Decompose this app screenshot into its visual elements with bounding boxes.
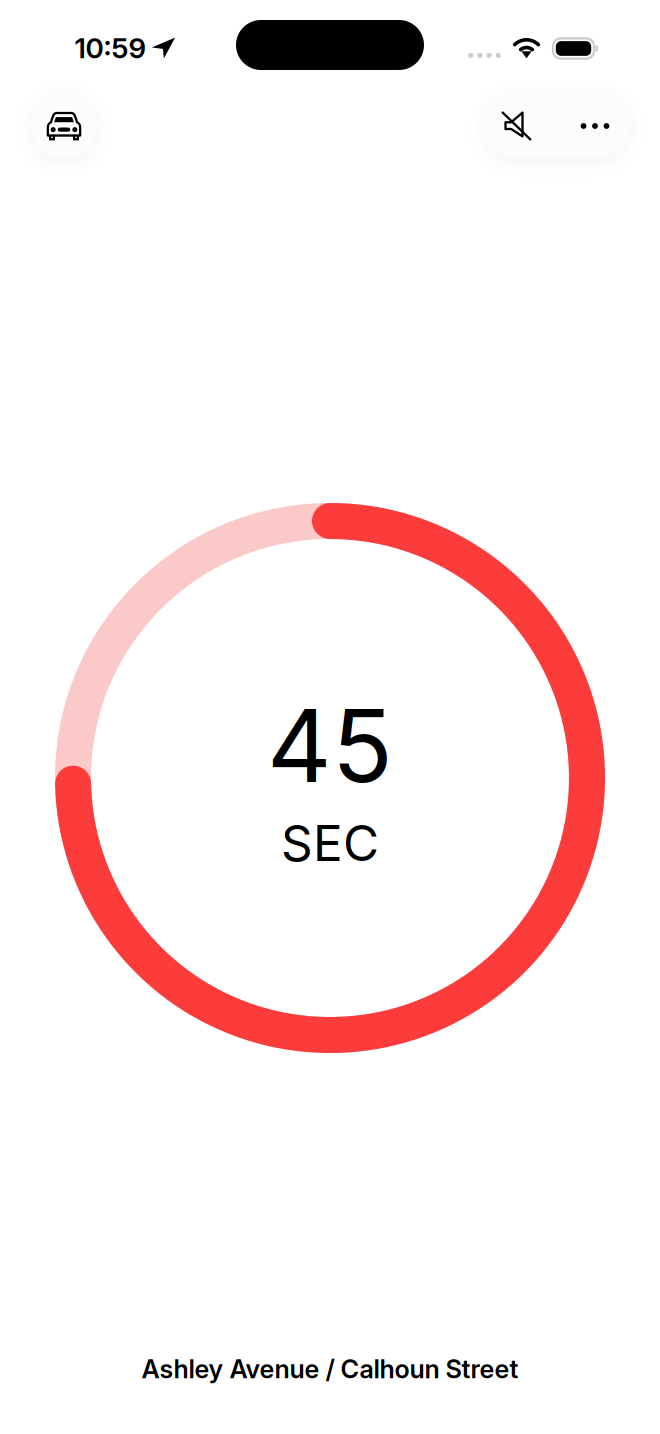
button[interactable]: Vehicle mode (31, 93, 97, 159)
staticText: 10:59 (74, 31, 146, 65)
button[interactable]: Unmute (484, 93, 557, 158)
staticText: Ashley Avenue / Calhoun Street (141, 1354, 518, 1384)
staticText: 45 (267, 685, 393, 806)
button[interactable]: More options (557, 93, 630, 158)
staticText: SEC (281, 813, 379, 873)
